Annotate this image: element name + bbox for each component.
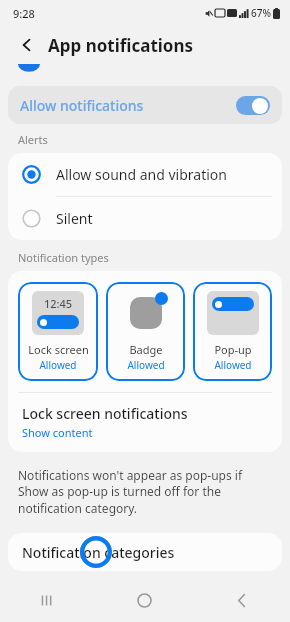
button[interactable]: Recent apps [0,578,96,622]
staticText: 67% [251,6,271,20]
staticText: 9:28 [13,6,35,21]
staticText: Notifications won't appear as pop-ups if… [18,467,268,517]
button[interactable]: Allow notifications [8,86,282,124]
button[interactable]: Silent [8,197,282,240]
staticText: Badge [129,342,163,357]
button[interactable]: Notification categories [8,533,282,571]
button[interactable]: Home [96,578,193,622]
staticText: Show content [22,425,93,440]
button[interactable]: Allow sound and vibration [8,153,282,196]
staticText: Lock screen [28,342,89,357]
staticText: Alerts [18,132,48,147]
staticText: Allowed [39,358,77,372]
staticText: App notifications [48,34,194,57]
button[interactable]: Lock screen notifications [8,393,282,452]
staticText: Notification categories [22,543,175,562]
button[interactable]: Back [14,32,40,58]
staticText: Allow sound and vibration [56,165,227,184]
staticText: Pop-up [214,342,252,357]
staticText: 12:45 [44,296,73,311]
button[interactable]: Badge [106,282,185,381]
button[interactable]: 12:45 [18,282,98,381]
staticText: Allow notifications [20,96,144,115]
button[interactable]: Back [193,578,290,622]
staticText: Lock screen notifications [22,404,188,423]
staticText: Allowed [214,358,252,372]
staticText: Notification types [18,250,109,265]
staticText: Silent [56,209,93,228]
staticText: Allowed [127,358,165,372]
button[interactable]: Pop-up [193,282,272,381]
